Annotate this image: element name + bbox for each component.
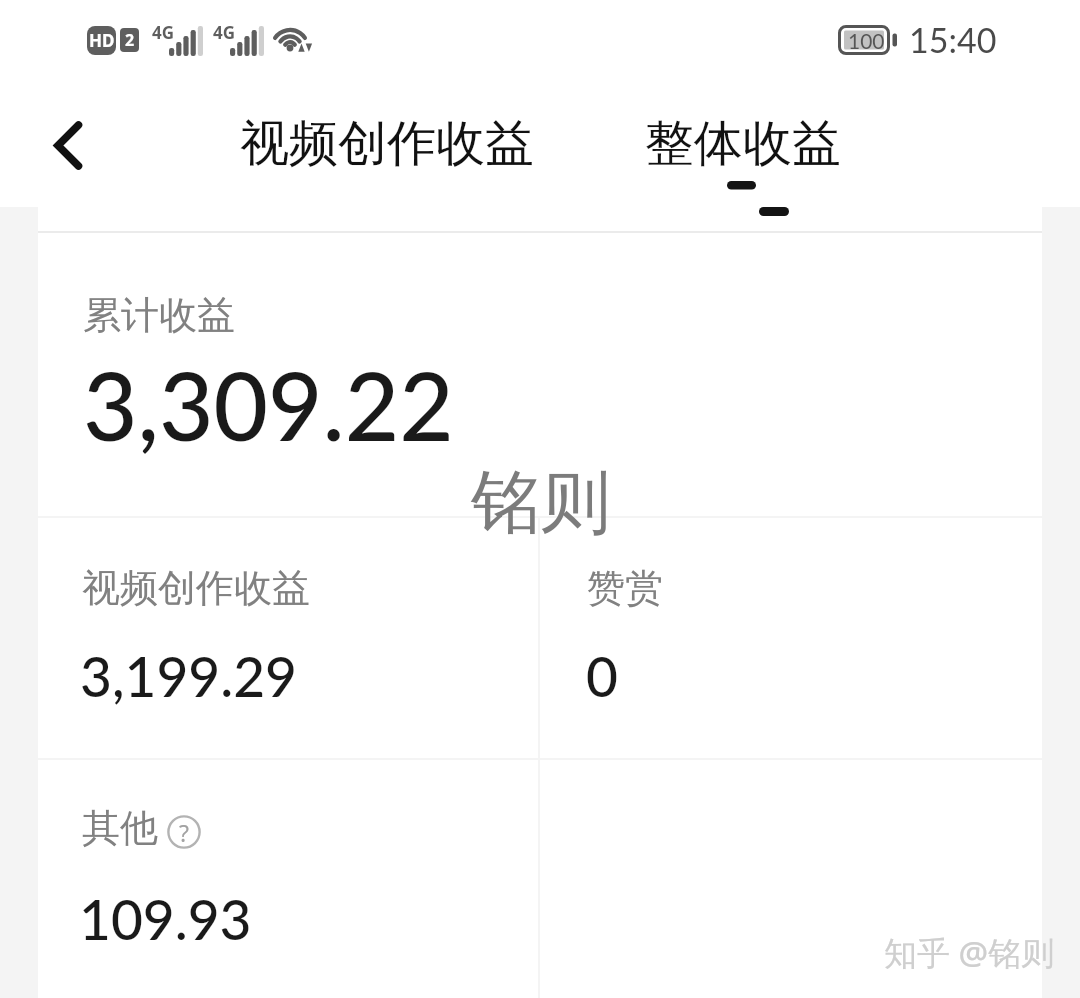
button[interactable]: 整体收益	[621, 101, 865, 183]
button[interactable]: What counts as other income	[167, 815, 201, 849]
staticText: 铭则	[471, 459, 611, 547]
staticText: 3,309.22	[83, 348, 454, 461]
staticText: 知乎 @铭则	[884, 930, 1055, 975]
staticText: 视频创作收益	[240, 113, 534, 175]
staticText: 100	[848, 28, 885, 53]
staticText: 0	[586, 643, 618, 709]
button[interactable]: Back	[34, 111, 102, 179]
staticText: 视频创作收益	[82, 564, 310, 612]
staticText: ?	[179, 817, 189, 848]
button[interactable]: 视频创作收益	[216, 101, 558, 183]
button[interactable]: 其他	[38, 760, 538, 998]
staticText: HD	[89, 29, 115, 52]
button[interactable]: 累计收益	[38, 233, 1042, 516]
staticText: 4G	[152, 21, 175, 44]
staticText: 2	[125, 29, 135, 51]
button[interactable]: 视频创作收益	[38, 518, 538, 758]
staticText: 累计收益	[83, 291, 235, 339]
staticText: 整体收益	[645, 113, 841, 175]
other: Battery 100 percent	[838, 25, 897, 55]
other: Wi-Fi connected	[268, 17, 312, 53]
staticText: 4G	[213, 21, 236, 44]
button[interactable]: 赞赏	[540, 518, 1042, 758]
staticText: 15:40	[909, 19, 997, 60]
staticText: 赞赏	[587, 564, 663, 612]
staticText: 109.93	[79, 886, 252, 952]
staticText: 其他	[82, 804, 158, 852]
staticText: 3,199.29	[80, 643, 297, 709]
